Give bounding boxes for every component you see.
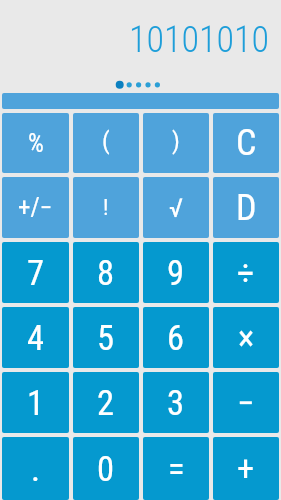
button[interactable]: D bbox=[213, 177, 279, 238]
button[interactable]: ! bbox=[73, 177, 139, 238]
staticText: 8 bbox=[97, 253, 115, 293]
staticText: 7 bbox=[27, 253, 45, 293]
staticText: % bbox=[28, 129, 44, 158]
staticText: ) bbox=[172, 126, 180, 155]
button[interactable]: 0 bbox=[73, 437, 139, 500]
staticText: 10101010 bbox=[129, 19, 270, 61]
staticText: = bbox=[168, 449, 185, 489]
staticText: ÷ bbox=[237, 253, 255, 293]
staticText: 3 bbox=[167, 383, 185, 423]
staticText: . bbox=[31, 449, 41, 489]
staticText: D bbox=[236, 187, 257, 229]
button[interactable]: 8 bbox=[73, 242, 139, 303]
staticText: √ bbox=[169, 193, 183, 223]
staticText: 2 bbox=[97, 383, 115, 423]
button[interactable]: = bbox=[143, 437, 209, 500]
staticText: + bbox=[237, 449, 255, 489]
button[interactable]: 5 bbox=[73, 307, 139, 368]
button[interactable]: +/− bbox=[2, 177, 69, 238]
button[interactable]: ÷ bbox=[213, 242, 279, 303]
button[interactable]: % bbox=[2, 113, 69, 173]
staticText: × bbox=[238, 318, 255, 358]
button[interactable]: 6 bbox=[143, 307, 209, 368]
staticText: ! bbox=[103, 195, 109, 221]
button[interactable]: 9 bbox=[143, 242, 209, 303]
staticText: 4 bbox=[27, 318, 45, 358]
staticText: − bbox=[237, 383, 255, 423]
staticText: 9 bbox=[167, 253, 185, 293]
button[interactable]: √ bbox=[143, 177, 209, 238]
button[interactable]: 4 bbox=[2, 307, 69, 368]
button[interactable]: ) bbox=[143, 113, 209, 173]
button[interactable]: × bbox=[213, 307, 279, 368]
button[interactable]: 7 bbox=[2, 242, 69, 303]
button[interactable]: + bbox=[213, 437, 279, 500]
staticText: ( bbox=[102, 126, 110, 155]
staticText: 6 bbox=[167, 318, 185, 358]
button[interactable]: C bbox=[213, 113, 279, 173]
button[interactable]: ( bbox=[73, 113, 139, 173]
staticText: +/− bbox=[18, 193, 53, 222]
staticText: 1 bbox=[27, 383, 45, 423]
staticText: 5 bbox=[97, 318, 115, 358]
button[interactable]: 3 bbox=[143, 372, 209, 433]
staticText: C bbox=[236, 122, 257, 164]
button[interactable]: 2 bbox=[73, 372, 139, 433]
button[interactable]: − bbox=[213, 372, 279, 433]
staticText: 0 bbox=[97, 449, 115, 489]
button[interactable]: . bbox=[2, 437, 69, 500]
button[interactable]: 1 bbox=[2, 372, 69, 433]
